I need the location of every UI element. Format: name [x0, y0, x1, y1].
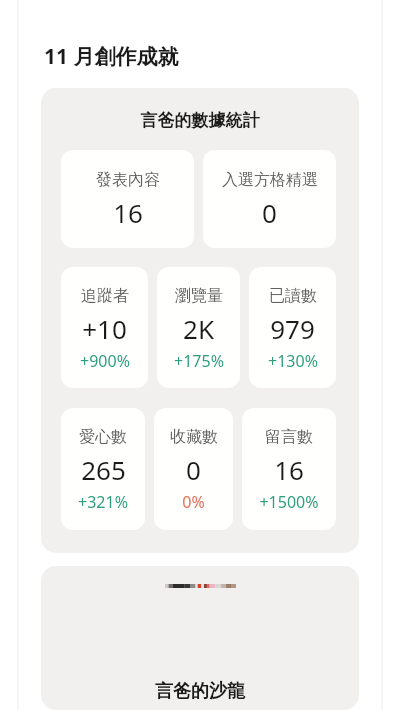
staticText: 言爸的數據統計 [41, 110, 359, 131]
staticText: 收藏數 [170, 427, 218, 447]
button[interactable]: 追蹤者 [61, 267, 148, 388]
other: Cover image [165, 584, 236, 588]
button[interactable]: 瀏覽量 [157, 267, 240, 388]
staticText: +321% [78, 491, 128, 513]
staticText: 愛心數 [79, 427, 127, 447]
staticText: +130% [268, 350, 318, 372]
button[interactable]: 入選方格精選 [203, 150, 336, 248]
staticText: 0% [182, 491, 205, 513]
staticText: 0 [186, 452, 201, 487]
staticText: 16 [274, 452, 304, 487]
button[interactable]: 愛心數 [61, 408, 145, 530]
button[interactable]: Cover image [41, 566, 359, 710]
staticText: 2K [183, 311, 214, 346]
staticText: 追蹤者 [81, 286, 129, 306]
button[interactable]: 收藏數 [154, 408, 233, 530]
staticText: 瀏覽量 [175, 286, 223, 306]
staticText: 發表內容 [96, 170, 160, 190]
staticText: 已讀數 [269, 286, 317, 306]
staticText: 16 [113, 195, 143, 230]
staticText: 留言數 [265, 427, 313, 447]
staticText: 979 [270, 311, 315, 346]
staticText: +10 [82, 311, 127, 346]
button[interactable]: 已讀數 [249, 267, 336, 388]
button[interactable]: 發表內容 [61, 150, 194, 248]
button[interactable]: 留言數 [242, 408, 336, 530]
staticText: +1500% [259, 491, 319, 513]
staticText: +175% [174, 350, 224, 372]
staticText: 入選方格精選 [222, 170, 318, 190]
staticText: 265 [81, 452, 126, 487]
staticText: 0 [262, 195, 277, 230]
staticText: +900% [80, 350, 130, 372]
staticText: 11 月創作成就 [44, 42, 179, 71]
staticText: 言爸的沙龍 [41, 680, 359, 703]
